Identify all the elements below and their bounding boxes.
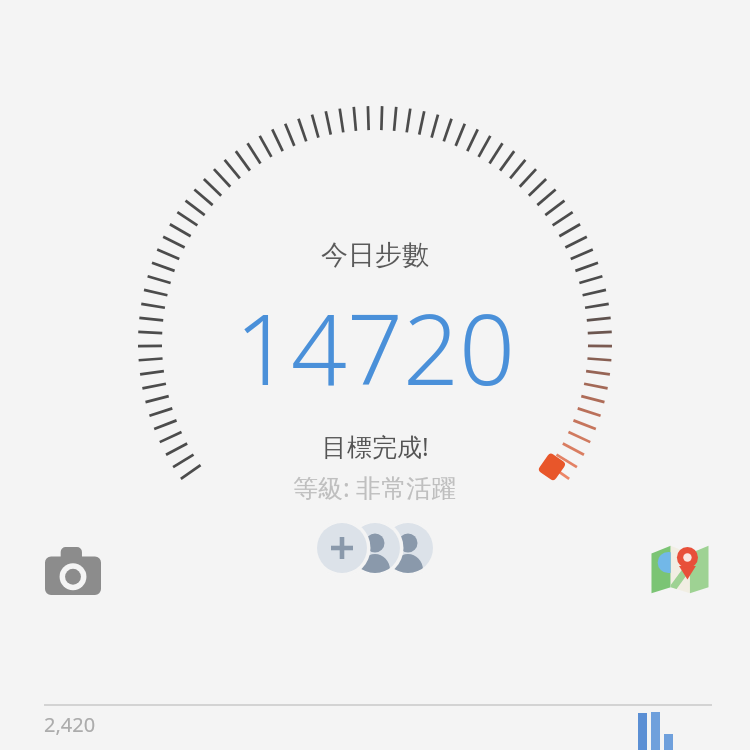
staticText: 2,420	[44, 711, 96, 738]
button[interactable]: Map	[649, 539, 711, 595]
button[interactable]: Friends	[316, 519, 434, 577]
staticText: 14720	[235, 280, 515, 413]
staticText: 等級: 非常活躍	[293, 470, 457, 504]
staticText: 今日步數	[321, 238, 429, 272]
staticText: 目標完成!	[322, 429, 429, 463]
button[interactable]: Camera	[45, 547, 101, 595]
